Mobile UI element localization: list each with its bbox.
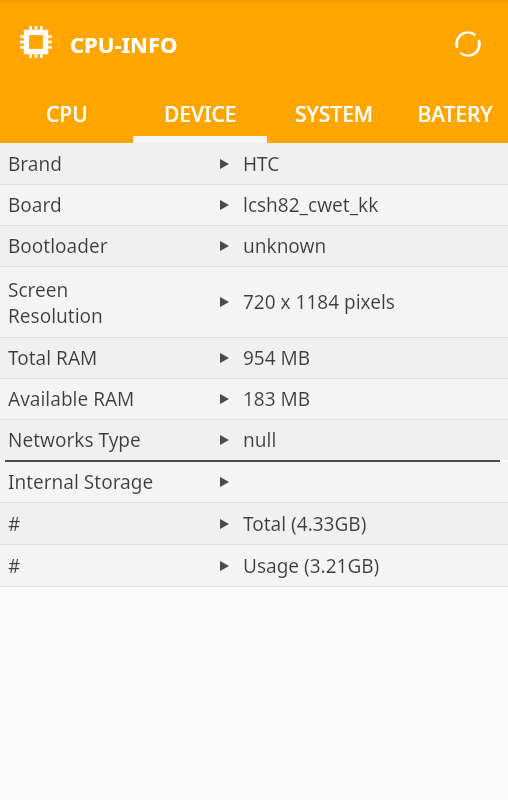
staticText: Networks Type — [8, 427, 141, 453]
staticText: Board — [8, 192, 62, 218]
staticText: Total (4.33GB) — [243, 511, 367, 537]
button[interactable]: Networks Type — [0, 420, 508, 460]
button[interactable]: Internal Storage — [0, 462, 508, 502]
staticText: # — [8, 553, 21, 579]
button[interactable]: CPU — [0, 85, 133, 143]
staticText: CPU — [46, 100, 88, 129]
button[interactable]: Screen Resolution — [0, 267, 508, 337]
button[interactable]: DEVICE — [133, 85, 267, 143]
staticText: Screen Resolution — [8, 277, 103, 328]
button[interactable]: Total RAM — [0, 338, 508, 378]
staticText: Total RAM — [8, 345, 98, 371]
staticText: Internal Storage — [8, 469, 154, 495]
staticText: DEVICE — [164, 100, 237, 129]
staticText: HTC — [243, 151, 280, 177]
button[interactable]: Refresh — [446, 22, 490, 66]
button[interactable]: Brand — [0, 143, 508, 184]
staticText: Bootloader — [8, 233, 108, 259]
staticText: lcsh82_cwet_kk — [243, 192, 379, 218]
staticText: Usage (3.21GB) — [243, 553, 380, 579]
staticText: 720 x 1184 pixels — [243, 289, 395, 315]
button[interactable]: SYSTEM — [267, 85, 401, 143]
staticText: SYSTEM — [295, 100, 374, 129]
staticText: Brand — [8, 151, 62, 177]
button[interactable]: Board — [0, 185, 508, 225]
button[interactable]: Bootloader — [0, 226, 508, 266]
button[interactable]: Available RAM — [0, 379, 508, 419]
staticText: BATERY — [417, 100, 493, 129]
staticText: Available RAM — [8, 386, 135, 412]
staticText: 954 MB — [243, 345, 311, 371]
staticText: CPU-INFO — [70, 29, 178, 59]
staticText: null — [243, 427, 277, 453]
button[interactable]: # — [0, 545, 508, 586]
staticText: 183 MB — [243, 386, 311, 412]
staticText: # — [8, 511, 21, 537]
staticText: unknown — [243, 233, 327, 259]
button[interactable]: BATERY — [401, 85, 508, 143]
button[interactable]: # — [0, 503, 508, 544]
